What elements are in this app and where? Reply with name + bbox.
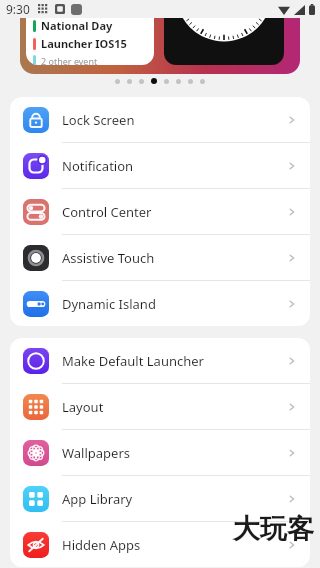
staticText: 2 other event <box>41 55 98 65</box>
staticText: Assistive Touch <box>62 249 287 267</box>
staticText: 9:30 <box>6 1 30 17</box>
staticText: 8 <box>188 26 195 42</box>
button[interactable]: Clock widget <box>164 18 284 65</box>
staticText: Hidden Apps <box>62 536 287 554</box>
button[interactable]: Control Center <box>10 189 310 234</box>
staticText: 5 <box>236 37 243 53</box>
button[interactable]: Calendar widget <box>26 18 154 65</box>
staticText: App Library <box>62 490 287 508</box>
button[interactable]: Hidden Apps <box>10 522 310 567</box>
button[interactable]: Notification <box>10 143 310 188</box>
staticText: 7 <box>202 37 209 53</box>
button[interactable]: Layout <box>10 384 310 429</box>
staticText: Wallpapers <box>62 444 287 462</box>
staticText: Layout <box>62 398 287 416</box>
button[interactable]: Assistive Touch <box>10 235 310 280</box>
staticText: Launcher IOS15 <box>41 36 127 51</box>
staticText: Lock Screen <box>62 111 287 129</box>
staticText: Control Center <box>62 203 287 221</box>
staticText: 大玩客 <box>233 512 314 546</box>
staticText: Dynamic Island <box>62 295 287 313</box>
staticText: National Day <box>41 18 113 33</box>
staticText: Make Default Launcher <box>62 352 287 370</box>
button[interactable]: Lock Screen <box>10 97 310 142</box>
button[interactable]: Dynamic Island <box>10 281 310 326</box>
staticText: Notification <box>62 157 287 175</box>
button[interactable]: Wallpapers <box>10 430 310 475</box>
button[interactable]: Make Default Launcher <box>10 338 310 383</box>
button[interactable]: App Library <box>10 476 310 521</box>
staticText: 4 <box>251 26 258 42</box>
